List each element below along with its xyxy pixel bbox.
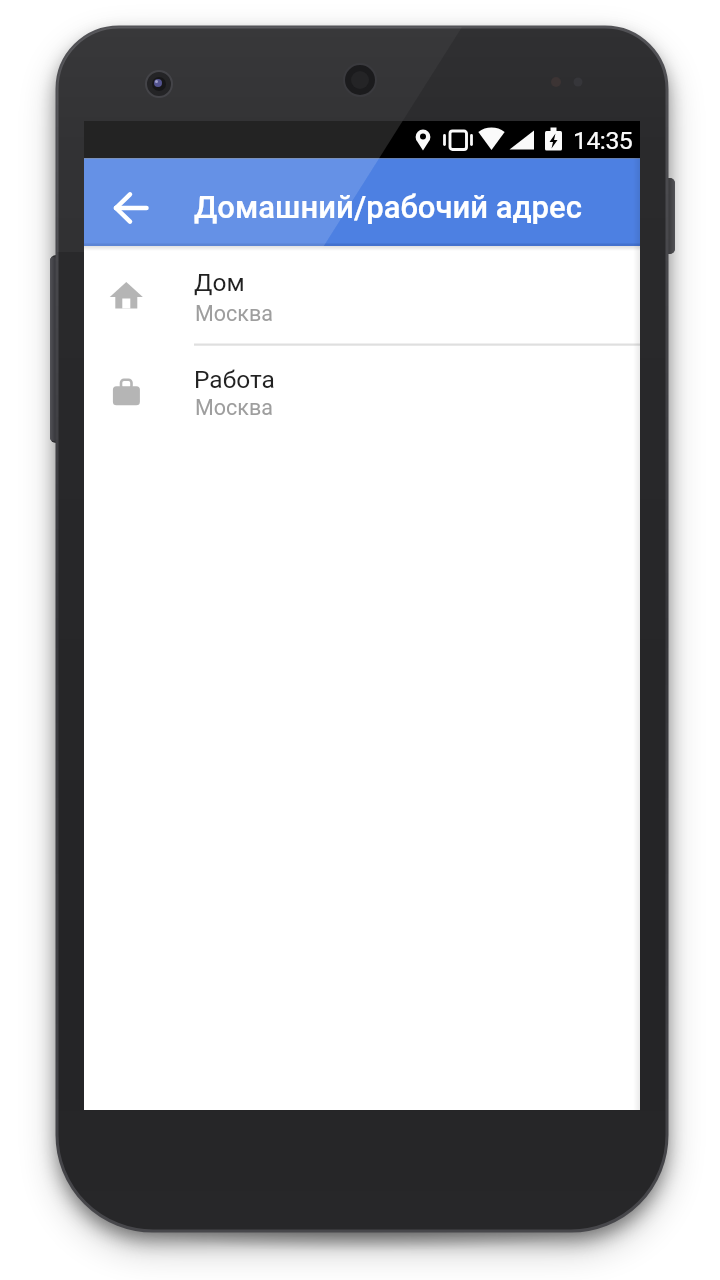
button[interactable] — [84, 344, 640, 444]
button[interactable] — [99, 176, 163, 240]
button[interactable] — [84, 246, 640, 344]
staticText: Дом — [194, 268, 245, 297]
staticText: Москва — [195, 301, 273, 326]
staticText: Работа — [194, 365, 275, 394]
staticText: Домашний/рабочий адрес — [194, 189, 582, 225]
staticText: Москва — [195, 395, 273, 420]
staticText: 14:35 — [573, 126, 633, 155]
